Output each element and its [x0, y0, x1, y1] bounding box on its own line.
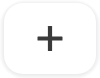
button[interactable]: Add: [4, 3, 96, 74]
